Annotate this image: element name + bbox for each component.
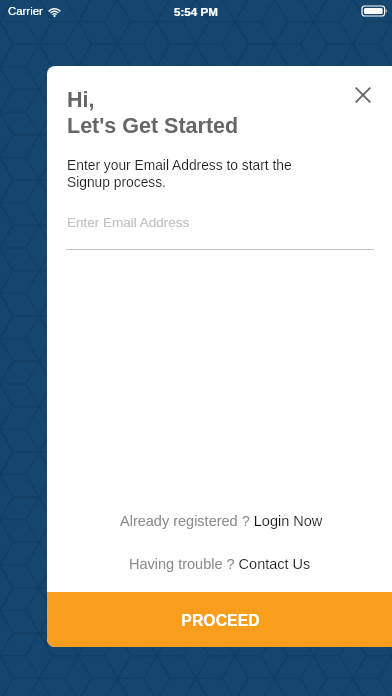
staticText: Hi,: [67, 88, 95, 112]
staticText: Signup process.: [67, 175, 166, 190]
staticText: 5:54 PM: [174, 5, 218, 18]
button[interactable]: Having trouble ? Contact Us: [47, 556, 392, 572]
button[interactable]: Close: [343, 75, 383, 115]
button[interactable]: Already registered ? Login Now: [47, 513, 392, 529]
staticText: Enter Email Address: [67, 215, 190, 230]
button[interactable]: PROCEED: [47, 592, 392, 647]
staticText: Let's Get Started: [67, 114, 239, 138]
staticText: Carrier: [8, 5, 43, 18]
staticText: Having trouble ? Contact Us: [129, 556, 311, 572]
staticText: Enter your Email Address to start the: [67, 158, 292, 173]
staticText: PROCEED: [47, 612, 392, 630]
staticText: Already registered ? Login Now: [120, 513, 323, 529]
